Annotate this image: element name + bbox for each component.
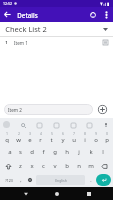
- button[interactable]: a: [5, 146, 14, 158]
- staticText: z: [19, 162, 22, 170]
- button[interactable]: Comma: [17, 174, 24, 186]
- button[interactable]: 2: [14, 132, 23, 144]
- button[interactable]: 6: [58, 132, 67, 144]
- button[interactable]: h: [62, 146, 72, 158]
- button[interactable]: Recent apps: [82, 187, 95, 200]
- button[interactable]: 8: [80, 132, 89, 144]
- staticText: Check List 2: [5, 24, 47, 34]
- button[interactable]: 5: [47, 132, 56, 144]
- staticText: p: [105, 136, 109, 144]
- staticText: ?123: [5, 178, 13, 183]
- button[interactable]: 9: [91, 132, 100, 144]
- staticText: y: [61, 136, 65, 144]
- staticText: l: [102, 148, 104, 156]
- staticText: 6: [62, 132, 64, 136]
- button[interactable]: m: [86, 160, 96, 172]
- button[interactable]: 1: [2, 132, 12, 144]
- staticText: ,: [20, 177, 22, 184]
- button[interactable]: Period: [87, 174, 94, 186]
- staticText: g: [53, 148, 57, 156]
- staticText: h: [65, 148, 69, 156]
- button[interactable]: s: [16, 146, 25, 158]
- staticText: 2: [18, 132, 20, 136]
- staticText: 1: [6, 132, 8, 136]
- button[interactable]: Back: [0, 7, 15, 22]
- button[interactable]: Keyboard tool 5: [85, 121, 93, 129]
- staticText: n: [77, 162, 81, 170]
- button[interactable]: Change language: [26, 174, 34, 186]
- button[interactable]: j: [74, 146, 84, 158]
- button[interactable]: Check List 2: [0, 22, 113, 36]
- staticText: o: [94, 136, 98, 144]
- button[interactable]: Reorder: [101, 38, 110, 47]
- button[interactable]: n: [74, 160, 84, 172]
- staticText: 1: [5, 40, 8, 45]
- button[interactable]: English: [36, 175, 85, 185]
- button[interactable]: Keyboard tool 3: [52, 121, 60, 129]
- button[interactable]: 4: [36, 132, 45, 144]
- button[interactable]: g: [50, 146, 60, 158]
- button[interactable]: ?123: [2, 174, 15, 186]
- staticText: .: [90, 177, 92, 184]
- staticText: k: [89, 148, 93, 156]
- staticText: 7: [73, 132, 75, 136]
- staticText: 8: [84, 132, 86, 136]
- button[interactable]: 7: [69, 132, 78, 144]
- button[interactable]: Shift: [2, 160, 14, 172]
- staticText: u: [72, 136, 76, 144]
- button[interactable]: Backspace: [98, 160, 111, 172]
- button[interactable]: k: [86, 146, 96, 158]
- button[interactable]: Enter: [96, 174, 111, 186]
- button[interactable]: Voice input: [102, 121, 110, 129]
- staticText: x: [30, 162, 34, 170]
- button[interactable]: 0: [102, 132, 111, 144]
- staticText: 12:52: [3, 1, 12, 6]
- staticText: f: [42, 148, 45, 156]
- button[interactable]: Keyboard tool 1: [19, 121, 27, 129]
- staticText: b: [65, 162, 69, 170]
- button[interactable]: f: [38, 146, 48, 158]
- button[interactable]: Back: [19, 187, 32, 200]
- staticText: Item 1: [14, 40, 28, 46]
- button[interactable]: Keyboard tool 2: [35, 121, 43, 129]
- staticText: t: [50, 136, 53, 144]
- button[interactable]: c: [38, 160, 48, 172]
- button[interactable]: 3: [25, 132, 34, 144]
- staticText: s: [19, 148, 22, 156]
- staticText: v: [53, 162, 57, 170]
- staticText: English: [55, 178, 67, 183]
- button[interactable]: b: [62, 160, 72, 172]
- staticText: m: [88, 162, 94, 170]
- staticText: 0: [106, 132, 108, 136]
- staticText: c: [42, 162, 45, 170]
- button[interactable]: z: [16, 160, 25, 172]
- button[interactable]: l: [98, 146, 108, 158]
- staticText: Item 2: [8, 107, 22, 113]
- button[interactable]: 1: [0, 37, 113, 48]
- staticText: r: [39, 136, 42, 144]
- staticText: w: [16, 136, 21, 144]
- button[interactable]: Gboard menu: [3, 121, 10, 128]
- staticText: 4: [40, 132, 42, 136]
- staticText: 9: [95, 132, 97, 136]
- button[interactable]: x: [27, 160, 36, 172]
- button[interactable]: Add item: [96, 103, 109, 116]
- staticText: 5: [51, 132, 53, 136]
- button[interactable]: Home: [50, 187, 63, 200]
- button[interactable]: Keyboard tool 4: [69, 121, 77, 129]
- staticText: e: [28, 136, 32, 144]
- staticText: a: [8, 148, 12, 156]
- staticText: i: [84, 136, 86, 144]
- staticText: Details: [17, 11, 38, 19]
- button[interactable]: More options: [100, 8, 113, 21]
- staticText: j: [78, 148, 80, 156]
- staticText: 3: [29, 132, 31, 136]
- staticText: q: [5, 136, 9, 144]
- button[interactable]: Help: [85, 7, 100, 22]
- staticText: d: [30, 148, 34, 156]
- button[interactable]: v: [50, 160, 60, 172]
- button[interactable]: d: [27, 146, 36, 158]
- button[interactable]: Item 2: [4, 104, 93, 115]
